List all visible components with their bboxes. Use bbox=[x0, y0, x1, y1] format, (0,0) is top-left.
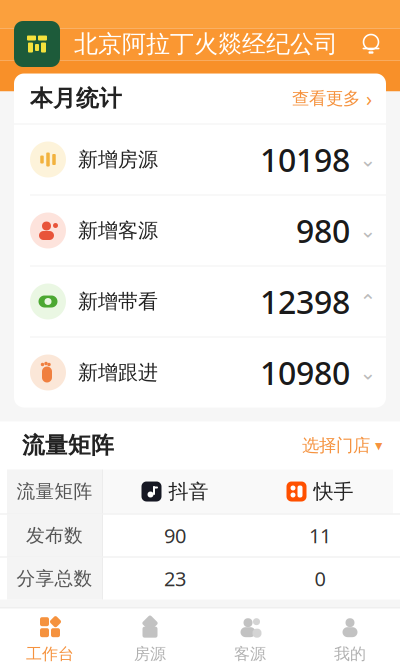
staticText: 10980 bbox=[260, 351, 350, 394]
staticText: ⌄ bbox=[359, 219, 376, 242]
staticText: 新增跟进 bbox=[78, 360, 158, 385]
staticText: 快手 bbox=[313, 479, 353, 504]
staticText: 查看更多 bbox=[292, 88, 360, 109]
button[interactable]: 新增房源 bbox=[14, 124, 386, 195]
staticText: 12398 bbox=[260, 280, 350, 323]
button[interactable]: 我的 bbox=[300, 608, 400, 666]
staticText: 我的 bbox=[334, 644, 366, 664]
staticText: › bbox=[366, 85, 372, 112]
staticText: 发布数 bbox=[26, 524, 83, 547]
staticText: 11 bbox=[309, 522, 331, 549]
staticText: 新增带看 bbox=[78, 289, 158, 314]
button[interactable]: 新增跟进 bbox=[14, 337, 386, 407]
staticText: ⌄ bbox=[359, 148, 376, 171]
staticText: 本月统计 bbox=[30, 85, 122, 112]
button[interactable]: 新增客源 bbox=[14, 195, 386, 266]
staticText: 新增客源 bbox=[78, 218, 158, 243]
staticText: 23 bbox=[164, 565, 186, 592]
staticText: 分享总数 bbox=[16, 567, 92, 590]
staticText: 房源 bbox=[134, 644, 166, 664]
staticText: 客源 bbox=[234, 644, 266, 664]
staticText: ⌃ bbox=[359, 290, 376, 313]
button[interactable]: 新增带看 bbox=[14, 266, 386, 337]
staticText: 新增房源 bbox=[78, 147, 158, 172]
button[interactable]: 通知 bbox=[358, 31, 400, 57]
staticText: 980 bbox=[296, 209, 350, 252]
staticText: 流量矩阵 bbox=[22, 432, 114, 459]
button[interactable]: 本月统计 bbox=[14, 73, 386, 123]
button[interactable]: 客源 bbox=[200, 608, 300, 666]
button[interactable]: 房源 bbox=[100, 608, 200, 666]
staticText: 工作台 bbox=[26, 644, 74, 664]
staticText: 90 bbox=[164, 522, 186, 549]
button[interactable]: 工作台 bbox=[0, 608, 100, 666]
staticText: 北京阿拉丁火燚经纪公司 bbox=[74, 29, 338, 59]
staticText: 0 bbox=[314, 565, 325, 592]
staticText: ⌄ bbox=[359, 361, 376, 384]
staticText: 抖音 bbox=[168, 479, 208, 504]
staticText: 10198 bbox=[260, 138, 350, 181]
button[interactable]: 选择门店 bbox=[302, 435, 400, 456]
staticText: ▾ bbox=[375, 437, 382, 454]
staticText: 选择门店 bbox=[302, 435, 370, 456]
staticText: 流量矩阵 bbox=[16, 480, 92, 503]
